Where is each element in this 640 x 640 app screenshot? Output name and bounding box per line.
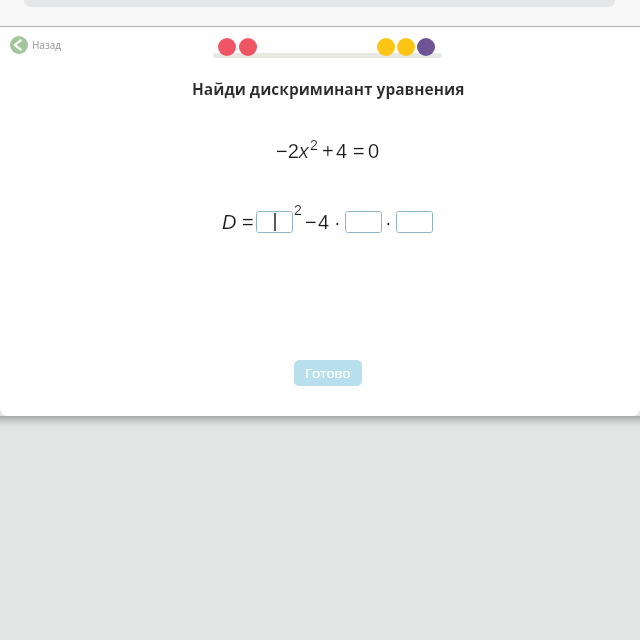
button[interactable]: Готово: [294, 360, 362, 386]
staticText: +: [322, 140, 334, 162]
staticText: Найди дискриминант уравнения: [192, 78, 465, 99]
staticText: Назад: [32, 38, 62, 52]
staticText: ·: [385, 211, 392, 233]
staticText: D =: [222, 211, 254, 233]
staticText: ·: [334, 211, 341, 233]
staticText: 0: [368, 140, 380, 162]
staticText: =: [353, 140, 365, 162]
staticText: 4: [336, 140, 348, 162]
button[interactable]: Поле ввода: [256, 211, 293, 233]
staticText: −2x: [276, 140, 309, 162]
button[interactable]: Назад: [6, 32, 70, 58]
button[interactable]: Поле ввода: [396, 211, 433, 233]
staticText: 4: [318, 211, 330, 233]
staticText: −: [305, 211, 317, 233]
button[interactable]: Поле ввода: [345, 211, 382, 233]
staticText: 2: [310, 137, 318, 153]
staticText: Готово: [305, 364, 351, 382]
staticText: 2: [294, 202, 302, 218]
